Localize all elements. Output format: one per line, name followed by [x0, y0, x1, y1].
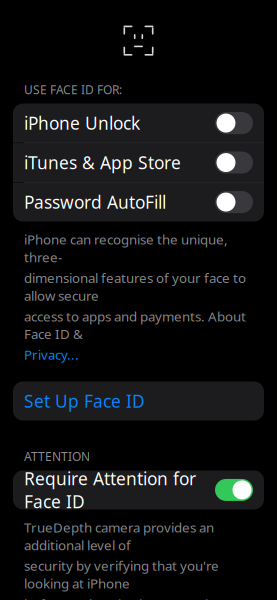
- button[interactable]: Password AutoFill: [13, 183, 264, 222]
- staticText: iPhone can recognise the unique, three-: [24, 231, 228, 266]
- staticText: before authenticating. Attention detecti…: [24, 595, 224, 600]
- staticText: ATTENTION: [24, 448, 90, 464]
- button[interactable]: iPhone Unlock: [13, 104, 264, 143]
- staticText: access to apps and payments. About Face …: [24, 307, 246, 343]
- button[interactable]: Set Up Face ID: [13, 381, 264, 420]
- staticText: Password AutoFill: [24, 190, 166, 213]
- button[interactable]: Require Attention for Face ID: [13, 470, 264, 509]
- staticText: USE FACE ID FOR:: [24, 82, 122, 97]
- staticText: dimensional features of your face to all…: [24, 269, 246, 304]
- button[interactable]: iTunes & App Store: [13, 143, 264, 182]
- staticText: iPhone Unlock: [24, 111, 140, 134]
- staticText: iTunes & App Store: [24, 151, 181, 174]
- staticText: Privacy...: [24, 346, 79, 363]
- staticText: security by verifying that you're lookin…: [24, 557, 219, 592]
- staticText: Set Up Face ID: [24, 389, 145, 412]
- staticText: TrueDepth camera provides an additional …: [24, 518, 214, 554]
- staticText: Require Attention for Face ID: [24, 467, 196, 513]
